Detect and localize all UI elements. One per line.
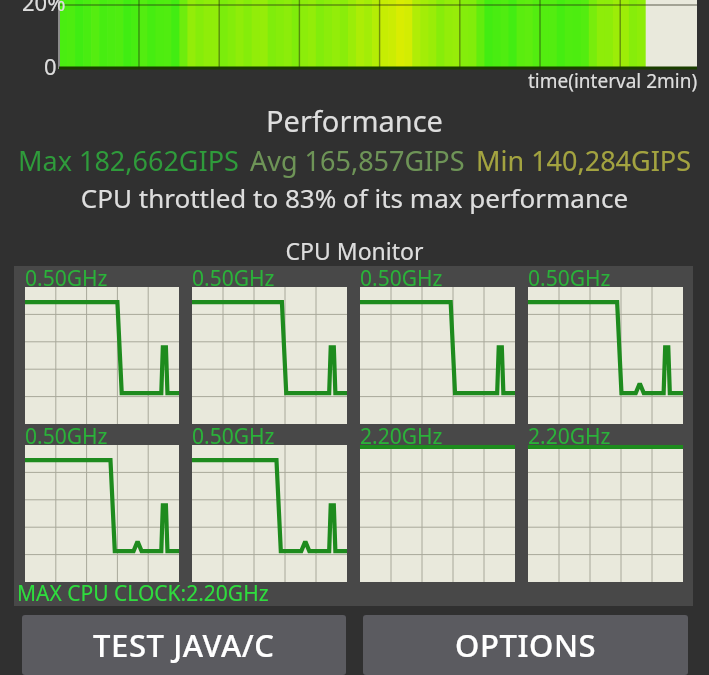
staticText: OPTIONS (455, 624, 597, 666)
button[interactable]: CPU core 1 clock graph (25, 287, 179, 424)
button[interactable]: CPU core 4 clock graph (528, 287, 683, 424)
staticText: 0.50GHz (25, 422, 108, 451)
staticText: 2.20GHz (528, 422, 611, 451)
staticText: CPU Monitor (0, 235, 709, 266)
button[interactable]: CPU core 8 clock graph (528, 445, 683, 582)
staticText: Avg 165,857GIPS (250, 142, 465, 179)
staticText: 2.20GHz (360, 422, 443, 451)
staticText: time(interval 2min) (528, 68, 698, 94)
staticText: Performance (0, 101, 709, 140)
button[interactable]: CPU core 7 clock graph (360, 445, 515, 582)
staticText: Max 182,662GIPS (18, 142, 239, 179)
staticText: Min 140,284GIPS (476, 142, 692, 179)
staticText: 0.50GHz (528, 264, 611, 293)
button[interactable]: OPTIONS (363, 615, 688, 675)
button[interactable]: CPU core 3 clock graph (360, 287, 515, 424)
staticText: 0.50GHz (192, 422, 275, 451)
staticText: TEST JAVA/C (93, 624, 275, 666)
staticText: 0.50GHz (192, 264, 275, 293)
staticText: 0.50GHz (360, 264, 443, 293)
staticText: MAX CPU CLOCK:2.20GHz (17, 579, 269, 608)
button[interactable]: CPU core 5 clock graph (25, 445, 179, 582)
staticText: 0.50GHz (25, 264, 108, 293)
staticText: 0 (44, 51, 57, 81)
staticText: 20% (22, 0, 66, 17)
button[interactable]: CPU core 2 clock graph (192, 287, 347, 424)
staticText: CPU throttled to 83% of its max performa… (0, 180, 709, 215)
button[interactable]: CPU core 6 clock graph (192, 445, 347, 582)
button[interactable]: TEST JAVA/C (22, 615, 346, 675)
